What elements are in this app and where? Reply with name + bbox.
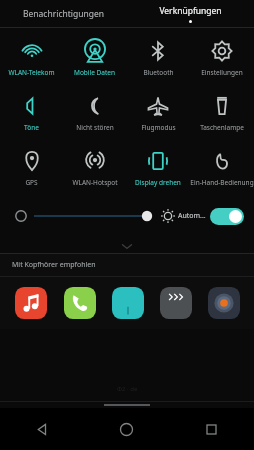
button[interactable]: Einstellungen [190, 30, 254, 85]
button[interactable]: GPS [0, 140, 63, 195]
staticText: Verknüpfungen [159, 5, 222, 17]
button[interactable]: Recents [169, 408, 254, 450]
button[interactable]: Nicht stören [63, 85, 126, 140]
staticText: Ein-Hand-Bedienung [190, 178, 254, 187]
button[interactable]: Verknüpfungen [127, 0, 254, 28]
staticText: Display drehen [135, 178, 181, 187]
button[interactable]: Ein-Hand-Bedienung [190, 140, 254, 195]
button[interactable]: Töne [0, 85, 63, 140]
button[interactable]: Auto brightness toggle [210, 208, 244, 225]
button[interactable]: Brightness slider [32, 201, 157, 231]
button[interactable]: Expand [0, 239, 254, 253]
staticText: Φ2 · de [117, 385, 138, 393]
staticText: Autom... [178, 211, 206, 221]
button[interactable]: WLAN-Hotspot [63, 140, 126, 195]
button[interactable]: Home [84, 408, 169, 450]
button[interactable]: Back [0, 408, 84, 450]
staticText: Taschenlampe [200, 123, 244, 132]
button[interactable]: Videos [152, 277, 200, 329]
button[interactable]: Music [6, 277, 55, 329]
staticText: Flugmodus [141, 123, 176, 132]
button[interactable]: Mobile Daten [63, 30, 126, 85]
staticText: Benachrichtigungen [23, 8, 104, 20]
button[interactable]: Display drehen [126, 140, 190, 195]
button[interactable]: Flugmodus [126, 85, 190, 140]
staticText: Bluetooth [143, 68, 174, 77]
staticText: Töne [24, 123, 39, 132]
button[interactable]: Bluetooth [126, 30, 190, 85]
staticText: Nicht stören [76, 123, 114, 132]
staticText: Einstellungen [201, 68, 243, 77]
button[interactable]: WLAN-Telekom [0, 30, 63, 85]
staticText: Mit Kopfhörer empfohlen [12, 260, 96, 270]
button[interactable]: Recorder [200, 277, 248, 329]
staticText: Mobile Daten [74, 68, 115, 77]
button[interactable]: Phone [55, 277, 104, 329]
button[interactable]: Taschenlampe [190, 85, 254, 140]
staticText: GPS [25, 178, 38, 187]
button[interactable]: FM Radio [104, 277, 152, 329]
staticText: WLAN-Telekom [8, 68, 55, 77]
button[interactable]: Benachrichtigungen [0, 0, 127, 28]
staticText: WLAN-Hotspot [72, 178, 118, 187]
button[interactable]: Brightness low [10, 205, 32, 227]
